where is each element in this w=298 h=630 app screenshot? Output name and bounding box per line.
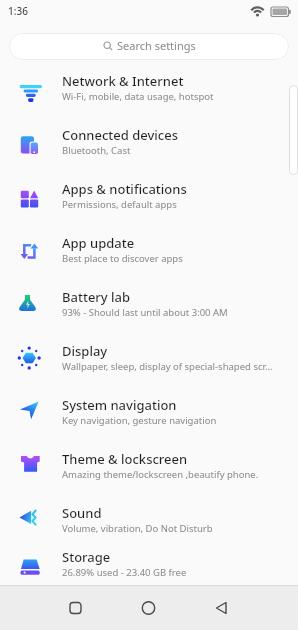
button[interactable]: Apps & notifications	[0, 173, 298, 227]
staticText: Bluetooth, Cast	[62, 144, 131, 157]
staticText: Battery lab	[62, 288, 131, 306]
button[interactable]	[100, 585, 199, 630]
staticText: Sound	[62, 504, 102, 522]
staticText: Apps & notifications	[62, 180, 187, 198]
button[interactable]: Network & Internet	[0, 65, 298, 119]
staticText: Best place to discover apps	[62, 252, 183, 265]
staticText: Wi-Fi, mobile, data usage, hotspot	[62, 90, 214, 103]
staticText: Network & Internet	[62, 72, 184, 90]
staticText: Storage	[62, 548, 111, 566]
staticText: 93% - Should last until about 3:00 AM	[62, 306, 228, 319]
button[interactable]	[199, 585, 298, 630]
button[interactable]: Display	[0, 335, 298, 389]
button[interactable]: System navigation	[0, 389, 298, 443]
button[interactable]: Storage	[0, 541, 298, 595]
staticText: Search settings	[117, 38, 196, 53]
staticText: Key navigation, gesture navigation	[62, 414, 217, 427]
button[interactable]: Search settings	[9, 33, 289, 60]
staticText: Display	[62, 342, 108, 360]
button[interactable]: Connected devices	[0, 119, 298, 173]
staticText: 26.89% used - 23.40 GB free	[62, 566, 187, 579]
staticText: System navigation	[62, 396, 177, 414]
staticText: Theme & lockscreen	[62, 450, 188, 468]
button[interactable]: Battery lab	[0, 281, 298, 335]
button[interactable]: Sound	[0, 497, 298, 551]
staticText: App update	[62, 234, 135, 252]
staticText: Wallpaper, sleep, display of special-sha…	[62, 360, 273, 373]
staticText: Amazing theme/lockscreen ,beautify phone…	[62, 468, 259, 481]
staticText: Connected devices	[62, 126, 179, 144]
staticText: 1:36	[8, 4, 28, 18]
button[interactable]: App update	[0, 227, 298, 281]
button[interactable]	[0, 585, 100, 630]
button[interactable]: Theme & lockscreen	[0, 443, 298, 497]
staticText: Permissions, default apps	[62, 198, 177, 211]
staticText: Volume, vibration, Do Not Disturb	[62, 522, 213, 535]
